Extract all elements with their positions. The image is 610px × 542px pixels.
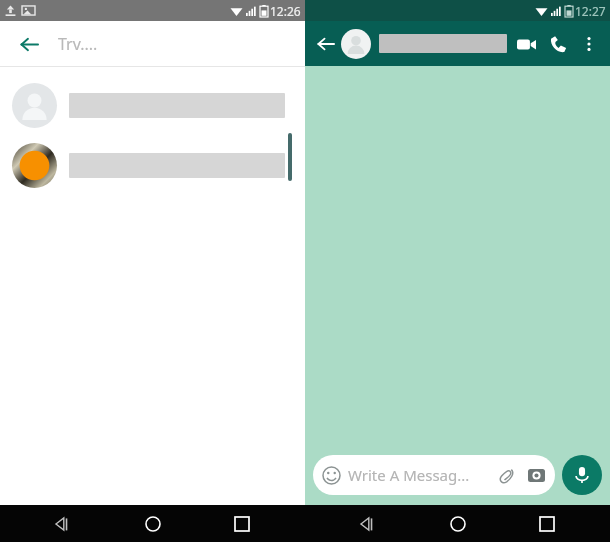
staticText: Trv.... (58, 33, 98, 55)
other: Attach (498, 466, 516, 484)
button[interactable]: Back (311, 29, 341, 59)
button[interactable]: Home (441, 507, 475, 541)
button[interactable] (0, 135, 305, 195)
button[interactable]: Recent apps (225, 507, 259, 541)
button[interactable]: Video call (510, 28, 542, 60)
staticText: 12:26 (270, 3, 301, 19)
button[interactable]: Home (136, 507, 170, 541)
button[interactable]: Record voice message (562, 455, 602, 495)
button[interactable] (0, 75, 305, 135)
staticText: 12:27 (575, 3, 606, 19)
button[interactable]: Back (12, 27, 46, 61)
button[interactable]: Back (351, 507, 385, 541)
button[interactable]: Recent apps (530, 507, 564, 541)
staticText: Write A Messag... (348, 465, 498, 485)
button[interactable]: Back (46, 507, 80, 541)
button[interactable] (341, 29, 371, 59)
other: Camera (528, 467, 545, 484)
button[interactable]: More options (574, 29, 604, 59)
button[interactable]: Voice call (542, 28, 574, 60)
button[interactable]: Back (0, 21, 305, 66)
button[interactable]: Write A Messag... (313, 455, 555, 495)
